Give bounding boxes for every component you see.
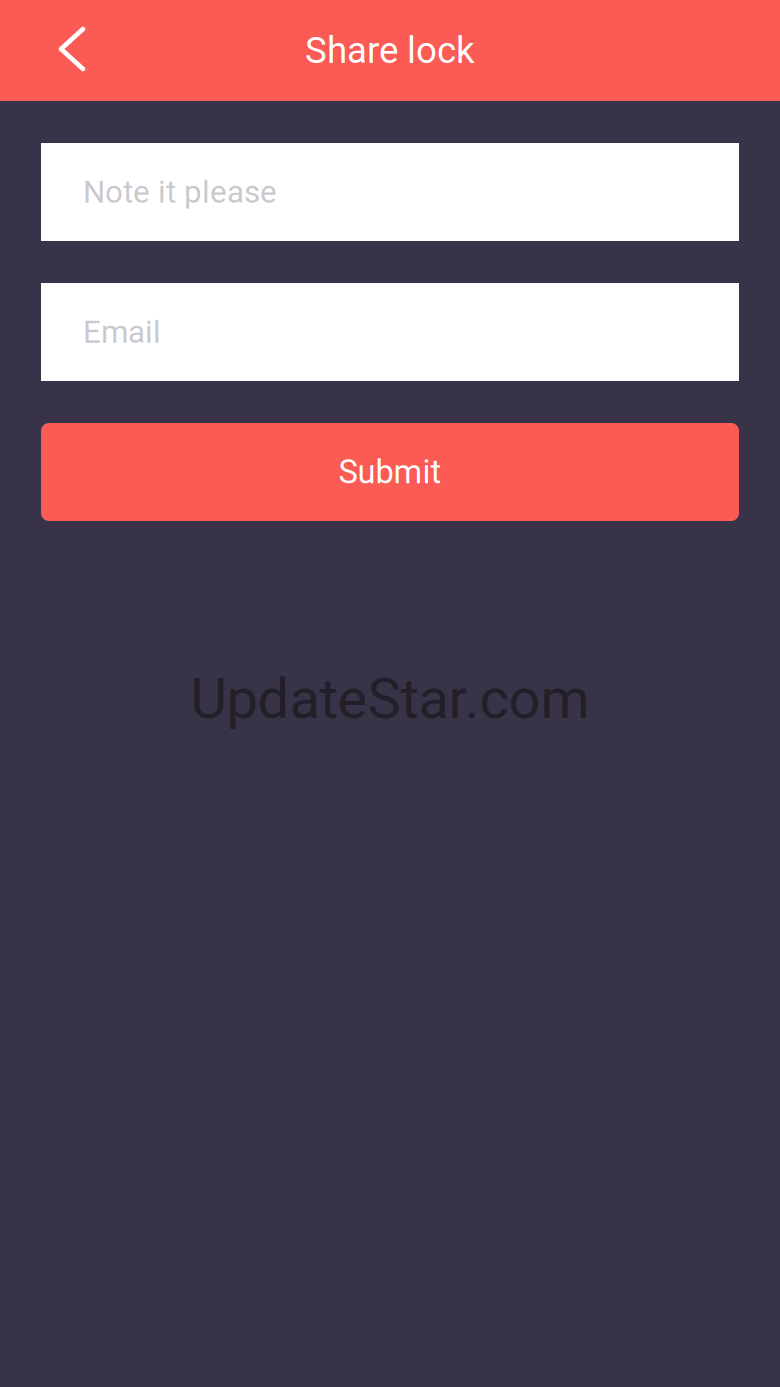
staticText: Email: [83, 314, 161, 350]
button[interactable]: Submit: [41, 423, 739, 521]
staticText: UpdateStar.com: [190, 666, 589, 732]
staticText: Note it please: [83, 174, 277, 210]
button[interactable]: Note it please: [41, 143, 739, 241]
button[interactable]: Email: [41, 283, 739, 381]
staticText: Submit: [338, 453, 441, 491]
staticText: Share lock: [305, 29, 475, 72]
button[interactable]: Back: [0, 0, 144, 101]
